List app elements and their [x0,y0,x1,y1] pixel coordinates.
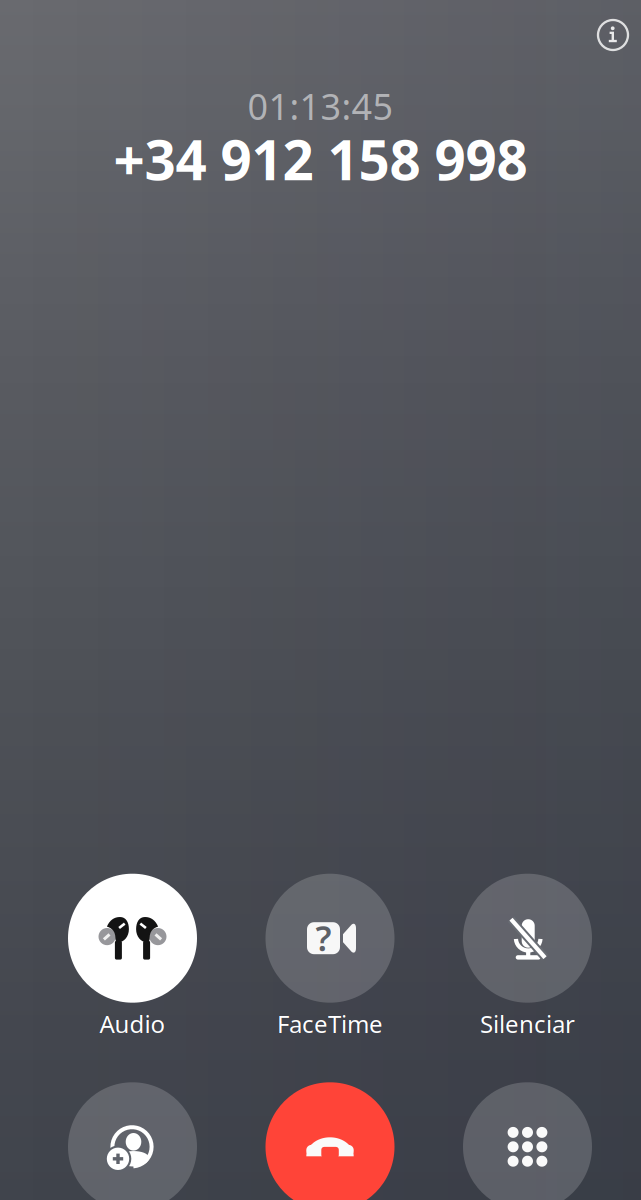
staticText: Audio [99,1008,165,1040]
staticText: ? [315,915,331,961]
button[interactable]: Silenciar [427,874,627,1045]
staticText: FaceTime [277,1008,383,1040]
button[interactable]: Finalizar llamada [265,1082,394,1200]
button[interactable]: Información de la llamada [587,9,639,61]
staticText: Silenciar [480,1008,575,1040]
staticText: 01:13:45 [247,82,393,130]
button[interactable]: FaceTime [230,874,430,1045]
button[interactable]: Añadir llamada [68,1082,197,1200]
button[interactable]: Audio [32,874,232,1045]
button[interactable]: Teclado [463,1082,592,1200]
staticText: +34 912 158 998 [113,123,527,195]
